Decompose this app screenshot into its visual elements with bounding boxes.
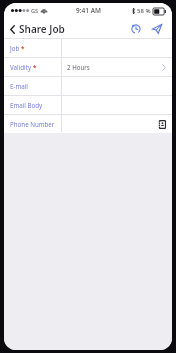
button[interactable]: Back [4,19,69,39]
staticText: Share Job [19,22,65,36]
button[interactable]: Pick contact [158,120,166,129]
staticText: 2 Hours [67,63,90,71]
button[interactable]: Send [149,21,165,37]
button[interactable]: Validity [4,58,172,76]
other: Back [10,25,15,34]
staticText: Job [10,44,20,52]
staticText: GS [31,7,39,14]
staticText: Phone Number [10,120,55,128]
staticText: E-mail [10,82,28,90]
button[interactable]: History [128,21,144,37]
staticText: * [21,44,25,52]
button[interactable]: Email Body [4,96,172,114]
button[interactable]: E-mail [4,77,172,95]
staticText: Validity [10,63,32,71]
button[interactable]: Phone Number [4,115,172,133]
staticText: Email Body [10,101,43,109]
staticText: * [33,63,37,71]
staticText: 9:41 AM [76,6,101,15]
staticText: 58 % [137,7,151,15]
button[interactable]: Job [4,39,172,57]
other: Choose validity [162,64,166,71]
